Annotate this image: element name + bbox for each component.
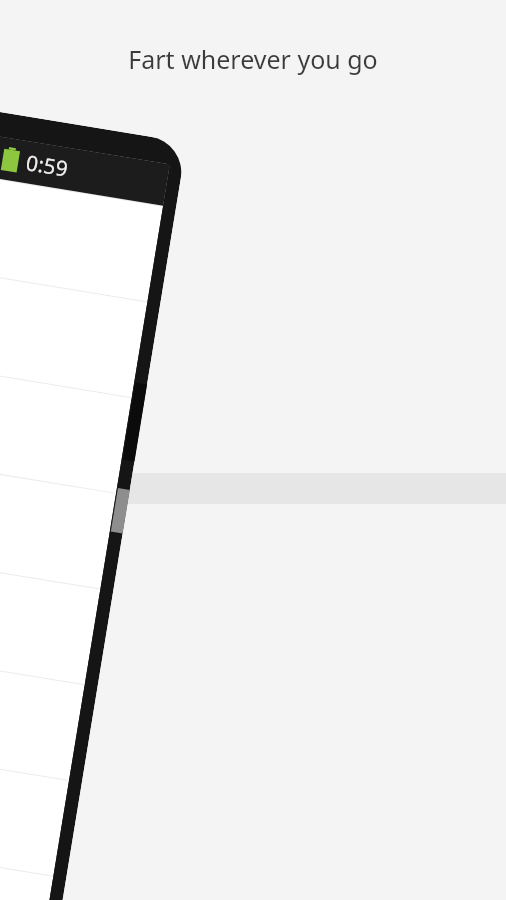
button[interactable] xyxy=(0,730,69,877)
button[interactable]: Fart wherever you go xyxy=(0,42,506,76)
button[interactable]: Volume xyxy=(123,382,147,461)
button[interactable]: Propulsion xyxy=(0,156,163,302)
button[interactable]: pes xyxy=(0,635,85,781)
button[interactable] xyxy=(0,826,53,900)
staticText: 0:59 xyxy=(24,148,70,184)
button[interactable] xyxy=(0,252,147,398)
button[interactable]: Power xyxy=(111,488,130,533)
staticText: Fart wherever you go xyxy=(128,42,378,76)
button[interactable] xyxy=(0,539,100,685)
button[interactable] xyxy=(0,443,116,590)
button[interactable]: beaucoup d air xyxy=(0,347,132,494)
